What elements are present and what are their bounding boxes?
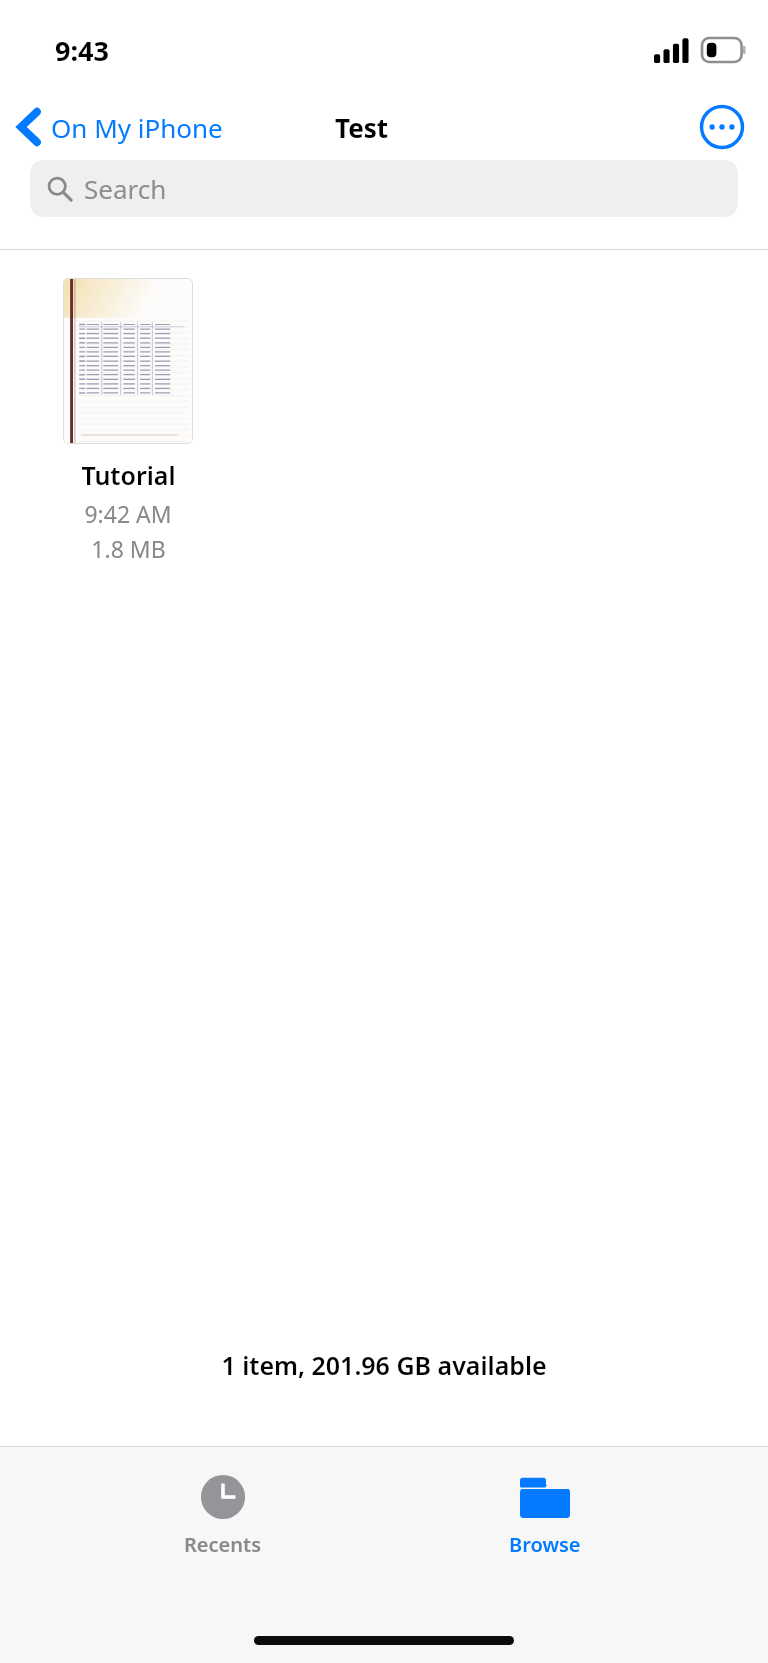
staticText: Browse — [509, 1531, 581, 1558]
staticText: Test — [335, 110, 389, 145]
button[interactable]: Search — [30, 160, 738, 217]
staticText: Recents — [184, 1531, 262, 1558]
staticText: 9:42 AM — [84, 498, 172, 529]
staticText: 1.8 MB — [91, 533, 166, 564]
button[interactable]: Recents — [123, 1465, 323, 1564]
staticText: Tutorial — [81, 458, 176, 492]
button[interactable]: More options — [696, 101, 748, 153]
button[interactable]: Tutorial — [59, 278, 197, 564]
staticText: 9:43 — [55, 32, 109, 69]
staticText: 1 item, 201.96 GB available — [221, 1348, 547, 1382]
button[interactable]: On My iPhone — [0, 102, 235, 152]
staticText: On My iPhone — [51, 110, 223, 145]
staticText: Search — [84, 171, 167, 206]
button[interactable]: Browse — [445, 1465, 645, 1564]
